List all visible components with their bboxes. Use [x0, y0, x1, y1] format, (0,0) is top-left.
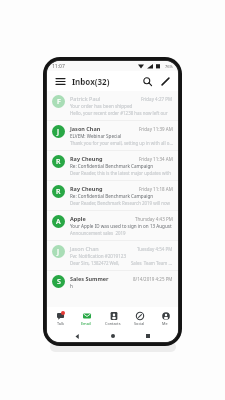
staticText: 8/14/2019 4:25 PM: [133, 276, 173, 282]
staticText: F: [57, 97, 61, 107]
staticText: Thursday 4:43 PM: [135, 216, 173, 222]
staticText: Apple: [70, 215, 86, 222]
staticText: Friday 11:18 AM: [139, 186, 173, 192]
button[interactable]: J: [47, 121, 178, 150]
staticText: R: [56, 157, 61, 167]
staticText: Ray Cheung: [70, 185, 103, 192]
button[interactable]: A: [47, 211, 178, 240]
staticText: S: [57, 277, 61, 287]
staticText: Your Apple ID was used to sign in on 13 …: [70, 223, 172, 229]
staticText: Ray Cheung: [70, 155, 103, 162]
staticText: Friday 11:34 AM: [139, 156, 173, 162]
staticText: Hello, your recent order #1238 has now l…: [70, 110, 168, 116]
staticText: Re: Confidential Benchmark Campaign: [70, 163, 154, 169]
staticText: 76%: [165, 64, 173, 69]
button[interactable]: Contacts: [100, 307, 126, 329]
button[interactable]: Social: [126, 307, 152, 329]
button[interactable]: Email: [73, 307, 99, 329]
staticText: Social: [134, 321, 145, 326]
staticText: Dear Sirs, 1382472 Well, Sales Team Team…: [70, 260, 173, 266]
staticText: Friday 4:27 PM: [141, 96, 173, 102]
staticText: Tuesday 4:54 PM: [137, 246, 173, 252]
button[interactable]: Recents: [142, 330, 154, 342]
staticText: Fw: Notification #2019123: [70, 253, 127, 259]
button[interactable]: J: [47, 241, 178, 270]
staticText: Thank you for your email, setting up in …: [70, 140, 173, 146]
staticText: A: [56, 217, 61, 227]
staticText: Me: [162, 321, 168, 326]
button[interactable]: F: [47, 91, 178, 120]
staticText: 11:07: [52, 63, 65, 70]
button[interactable]: Talk: [47, 307, 73, 329]
button[interactable]: Compose: [158, 74, 172, 88]
staticText: Email: [81, 321, 91, 326]
button[interactable]: Search: [140, 74, 154, 88]
button[interactable]: Home: [107, 330, 119, 342]
staticText: Jason Chan: [70, 125, 101, 132]
staticText: Talk: [57, 321, 64, 326]
button[interactable]: Menu: [53, 74, 67, 88]
staticText: Announcement sales 2019: [70, 230, 126, 236]
staticText: h: [70, 283, 73, 289]
staticText: R: [56, 187, 61, 197]
staticText: Re: Confidential Benchmark Campaign: [70, 193, 154, 199]
staticText: Your order has been shipped: [70, 103, 133, 109]
button[interactable]: R: [47, 151, 178, 180]
staticText: Patrick Paul: [70, 95, 101, 102]
button[interactable]: S: [47, 271, 178, 295]
staticText: Dear Reader, Benchmark Research 2019 wil…: [70, 200, 170, 206]
staticText: J: [57, 127, 60, 137]
staticText: Dear Reader, this is the latest major up…: [70, 170, 171, 176]
staticText: Sales Summer: [70, 275, 109, 282]
staticText: ELVEM: Webinar Special: [70, 133, 122, 139]
button[interactable]: Me: [152, 307, 178, 329]
staticText: Friday 11:39 AM: [139, 126, 173, 132]
staticText: Inbox(32): [72, 76, 110, 87]
button[interactable]: R: [47, 181, 178, 210]
staticText: Contacts: [105, 321, 121, 326]
staticText: J: [57, 247, 60, 257]
staticText: Jason Chan: [70, 245, 99, 252]
button[interactable]: Back: [71, 330, 83, 342]
